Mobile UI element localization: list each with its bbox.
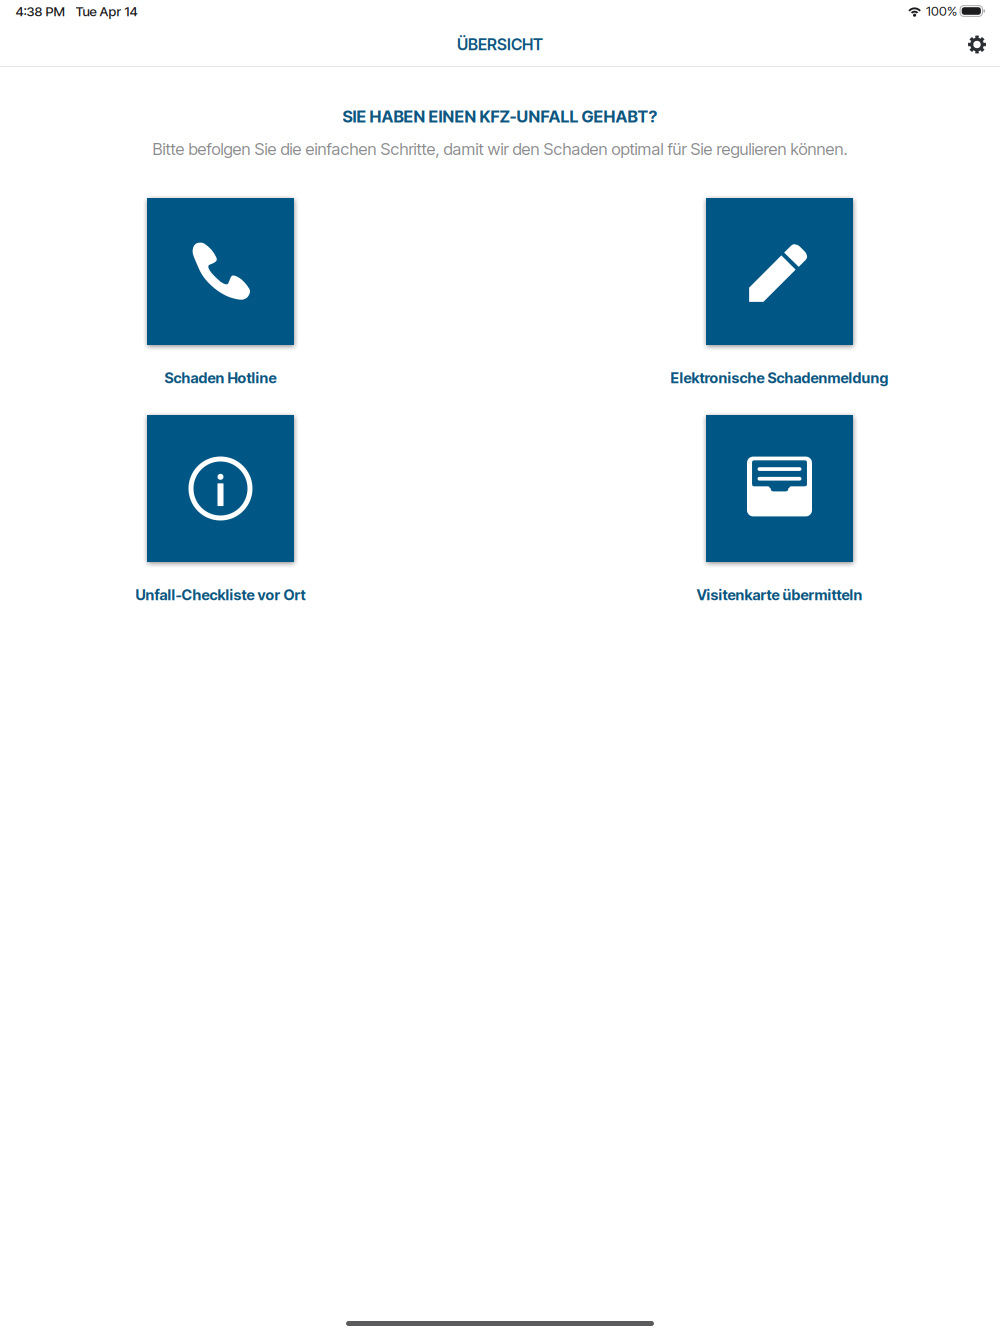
staticText: Tue Apr 14 [75,3,137,19]
staticText: Unfall-Checkliste vor Ort [135,586,305,604]
staticText: 100% [926,3,957,19]
button[interactable]: Unfall-Checkliste vor Ort [135,415,306,604]
button[interactable]: Settings [957,24,997,64]
staticText: ÜBERSICHT [457,35,543,54]
button[interactable]: Visitenkarte übermitteln [696,415,863,604]
button[interactable]: Schaden Hotline [147,198,294,387]
button[interactable]: Elektronische Schadenmeldung [670,198,888,387]
staticText: 4:38 PM [15,3,64,19]
staticText: Visitenkarte übermitteln [696,586,862,604]
staticText: Elektronische Schadenmeldung [670,369,888,387]
staticText: Schaden Hotline [164,369,276,387]
staticText: Bitte befolgen Sie die einfachen Schritt… [152,139,847,159]
staticText: SIE HABEN EINEN KFZ-UNFALL GEHABT? [342,106,657,126]
